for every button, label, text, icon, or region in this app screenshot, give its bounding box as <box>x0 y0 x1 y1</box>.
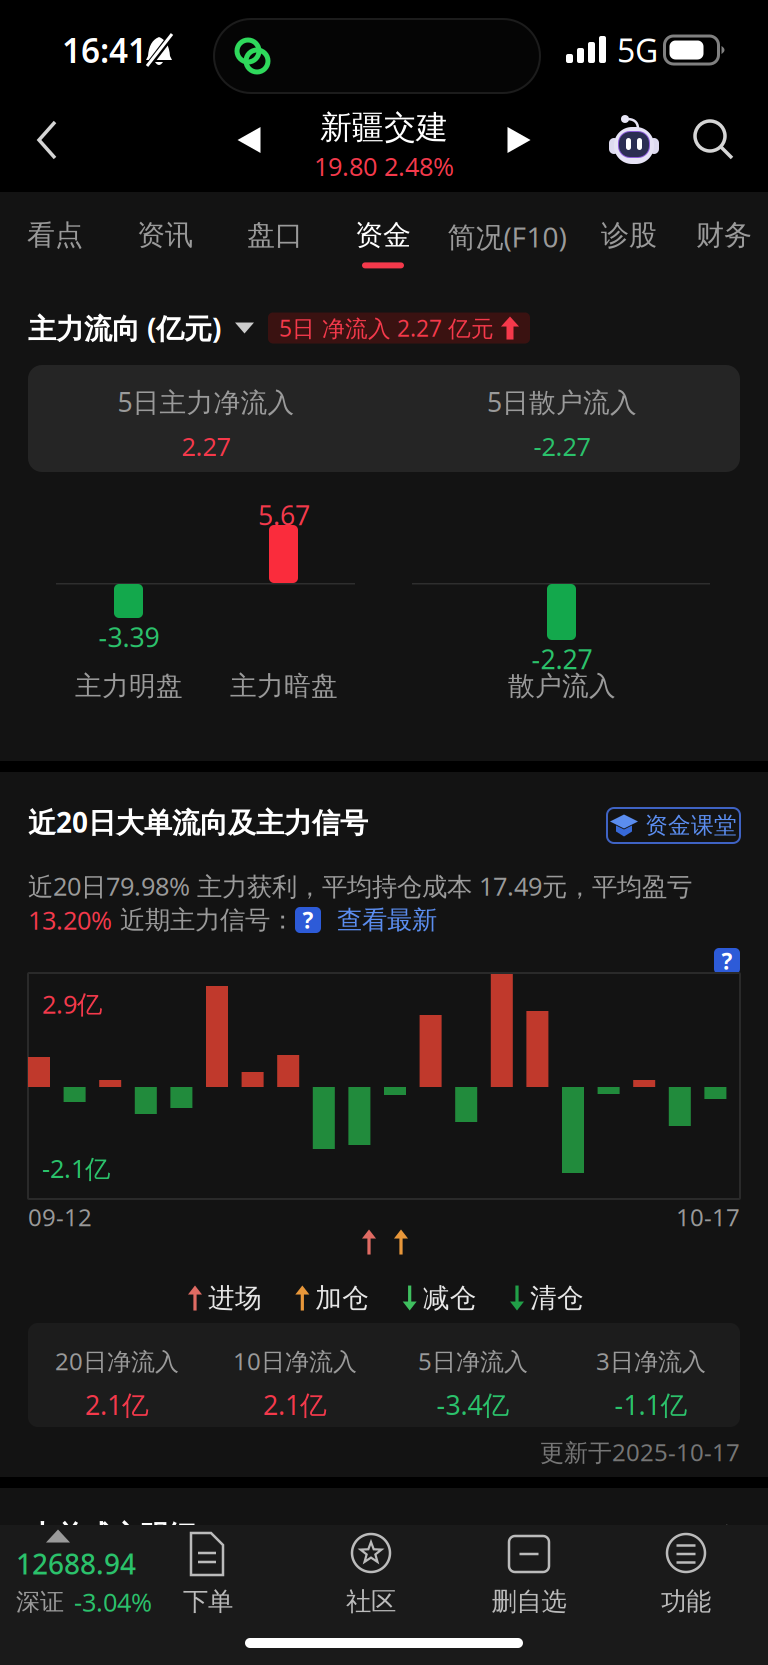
button[interactable]: 简况(F10) <box>436 192 578 283</box>
button[interactable]: Previous stock <box>226 96 272 184</box>
button[interactable]: Next stock <box>496 96 542 184</box>
staticText: 更多 <box>692 1521 740 1551</box>
button[interactable]: 资讯 <box>110 192 220 283</box>
staticText: 近20日大单流向及主力信号 <box>28 803 368 841</box>
staticText: 资金 <box>355 218 411 252</box>
button[interactable]: Search <box>680 96 748 184</box>
staticText: 减仓 <box>423 1282 477 1314</box>
staticText: 13.20% <box>28 903 112 937</box>
staticText: 5日散户流入 <box>487 384 637 419</box>
staticText: -2.1亿 <box>42 1151 110 1185</box>
button[interactable]: 下单 <box>133 1528 283 1638</box>
staticText: 大单成交明细 <box>28 1519 196 1553</box>
staticText: ? <box>721 946 732 976</box>
staticText: 散户流入 <box>508 670 616 702</box>
staticText: 3日净流入 <box>596 1345 706 1377</box>
staticText: 近20日79.98% 主力获利，平均持仓成本 17.49元，平均盈亏 <box>28 869 692 903</box>
button[interactable]: 功能 <box>611 1528 761 1638</box>
button[interactable]: 盘口 <box>220 192 330 283</box>
staticText: 盘口 <box>247 218 303 252</box>
button[interactable]: 社区 <box>296 1528 446 1638</box>
staticText: 2.1亿 <box>85 1387 149 1422</box>
button[interactable]: 诊股 <box>578 192 680 283</box>
button[interactable]: 财务 <box>680 192 768 283</box>
button[interactable]: Help <box>714 948 740 974</box>
button[interactable]: 资金 <box>330 192 436 283</box>
staticText: 看点 <box>27 218 83 252</box>
staticText: 新疆交建 <box>320 108 448 147</box>
staticText: 深证 <box>16 1587 64 1617</box>
staticText: 5G <box>617 29 658 71</box>
button[interactable]: 看点 <box>0 192 110 283</box>
staticText: 功能 <box>661 1586 711 1617</box>
staticText: 19.80 2.48% <box>314 149 454 183</box>
staticText: 20日净流入 <box>55 1345 179 1377</box>
staticText: 查看最新 <box>321 904 437 935</box>
staticText: 09-12 <box>28 1201 92 1233</box>
staticText: 进场 <box>208 1282 262 1314</box>
staticText: 财务 <box>696 218 752 252</box>
button[interactable]: 资金课堂 <box>607 808 740 843</box>
staticText: 净流入 2.27 亿元 <box>322 313 494 343</box>
staticText: 5日主力净流入 <box>117 384 294 419</box>
staticText: 更新于2025-10-17 <box>540 1436 740 1468</box>
staticText: -3.04% <box>74 1585 152 1619</box>
staticText: 清仓 <box>530 1282 584 1314</box>
staticText: 16:41 <box>62 28 147 72</box>
staticText: 10日净流入 <box>233 1345 357 1377</box>
staticText: 主力暗盘 <box>230 670 338 702</box>
staticText: 简况(F10) <box>447 218 566 255</box>
staticText: 主力明盘 <box>75 670 183 702</box>
staticText: 诊股 <box>601 218 657 252</box>
staticText: 社区 <box>346 1586 396 1617</box>
staticText: 删自选 <box>491 1586 566 1617</box>
staticText: -2.27 <box>531 641 592 677</box>
button[interactable]: 主力流向 (亿元) <box>28 308 254 348</box>
button[interactable]: 删自选 <box>454 1528 604 1638</box>
staticText: 5.67 <box>258 497 310 533</box>
staticText: 2.27 <box>181 429 230 463</box>
staticText: -3.4亿 <box>436 1387 509 1422</box>
button[interactable]: 12688.94 <box>6 1529 174 1633</box>
staticText: -2.27 <box>533 429 590 463</box>
staticText: 资讯 <box>137 218 193 252</box>
staticText: ? <box>302 905 313 935</box>
staticText: 下单 <box>183 1586 233 1617</box>
staticText: 加仓 <box>315 1282 369 1314</box>
button[interactable]: 5日 <box>268 312 530 343</box>
staticText: 5日 <box>279 313 315 343</box>
staticText: 近期主力信号： <box>112 904 295 935</box>
staticText: 资金课堂 <box>645 812 737 839</box>
button[interactable]: Back <box>14 96 80 184</box>
staticText: -3.39 <box>98 619 159 655</box>
button[interactable]: AI assistant <box>596 96 672 184</box>
staticText: 2.9亿 <box>42 987 102 1021</box>
staticText: -1.1亿 <box>614 1387 687 1422</box>
staticText: 2.1亿 <box>263 1387 327 1422</box>
staticText: 主力流向 (亿元) <box>28 309 221 347</box>
staticText: 5日净流入 <box>418 1345 528 1377</box>
staticText: 12688.94 <box>16 1545 136 1582</box>
staticText: 10-17 <box>676 1201 740 1233</box>
